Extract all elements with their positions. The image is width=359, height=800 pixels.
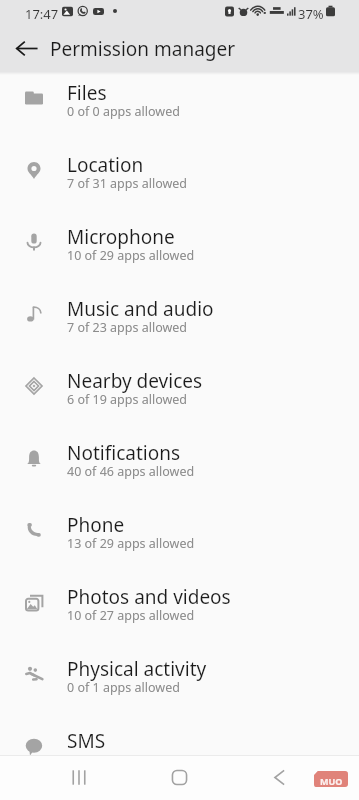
staticText: 0 of 0 apps allowed — [67, 103, 180, 120]
staticText: Files — [67, 80, 107, 106]
staticText: Location — [67, 152, 144, 178]
staticText: Music and audio — [67, 296, 214, 322]
staticText: 37% — [298, 5, 324, 23]
button[interactable]: Microphone — [0, 210, 359, 282]
button[interactable]: Photos and videos — [0, 570, 359, 642]
staticText: Nearby devices — [67, 368, 203, 394]
button[interactable]: Nearby devices — [0, 354, 359, 426]
button[interactable]: Navigate up — [3, 24, 51, 72]
staticText: SMS — [67, 728, 106, 754]
staticText: MUO — [320, 775, 343, 787]
staticText: Notifications — [67, 440, 181, 466]
button[interactable]: Location — [0, 138, 359, 210]
button[interactable]: Back — [240, 756, 320, 800]
staticText: Physical activity — [67, 656, 207, 682]
button[interactable]: Recent apps — [39, 756, 119, 800]
button[interactable]: Music and audio — [0, 282, 359, 354]
staticText: 10 of 29 apps allowed — [67, 247, 195, 264]
staticText: 13 of 29 apps allowed — [67, 535, 195, 552]
staticText: 7 of 31 apps allowed — [67, 175, 188, 192]
staticText: 40 of 46 apps allowed — [67, 463, 195, 480]
staticText: Photos and videos — [67, 584, 231, 610]
staticText: Microphone — [67, 224, 175, 250]
staticText: 17:47 — [25, 5, 59, 23]
staticText: Phone — [67, 512, 125, 538]
button[interactable]: Physical activity — [0, 642, 359, 714]
button[interactable]: Home — [140, 756, 220, 800]
button[interactable]: Phone — [0, 498, 359, 570]
staticText: 6 of 19 apps allowed — [67, 391, 188, 408]
button[interactable]: Notifications — [0, 426, 359, 498]
button[interactable]: SMS — [0, 714, 359, 786]
staticText: 10 of 27 apps allowed — [67, 607, 195, 624]
staticText: 0 of 1 apps allowed — [67, 679, 180, 696]
staticText: Permission manager — [50, 36, 236, 62]
staticText: 7 of 23 apps allowed — [67, 319, 188, 336]
button[interactable]: Files — [0, 66, 359, 138]
